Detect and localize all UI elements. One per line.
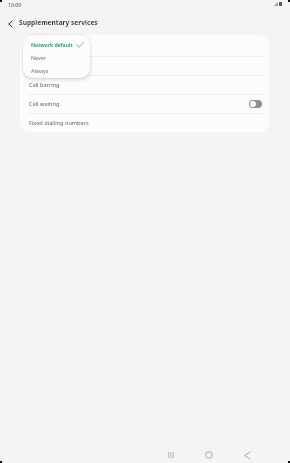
button[interactable]: Recent apps <box>161 445 181 463</box>
staticText: 10:00 <box>8 1 22 8</box>
staticText: Call waiting <box>29 100 60 108</box>
button[interactable]: Network default <box>23 38 90 51</box>
staticText: Caller ID <box>29 43 52 51</box>
staticText: Fixed dialling numbers <box>29 119 89 127</box>
staticText: Network default <box>31 41 73 48</box>
button[interactable]: Call waiting <box>20 95 270 113</box>
staticText: Never <box>31 54 47 61</box>
button[interactable]: Home <box>199 445 219 463</box>
button[interactable]: Call waiting toggle <box>249 100 262 108</box>
button[interactable]: Back <box>0 14 20 33</box>
staticText: Supplementary services <box>19 18 98 27</box>
button[interactable]: Never <box>23 51 90 64</box>
button[interactable]: Caller ID <box>20 38 270 56</box>
staticText: Call forwarding <box>29 62 70 70</box>
button[interactable]: Back <box>237 445 257 463</box>
button[interactable]: Always <box>23 64 90 77</box>
staticText: Always <box>31 67 49 74</box>
button[interactable]: Call forwarding <box>20 57 270 75</box>
button[interactable]: Fixed dialling numbers <box>20 114 270 132</box>
button[interactable]: Call barring <box>20 76 270 94</box>
staticText: Call barring <box>29 81 60 89</box>
